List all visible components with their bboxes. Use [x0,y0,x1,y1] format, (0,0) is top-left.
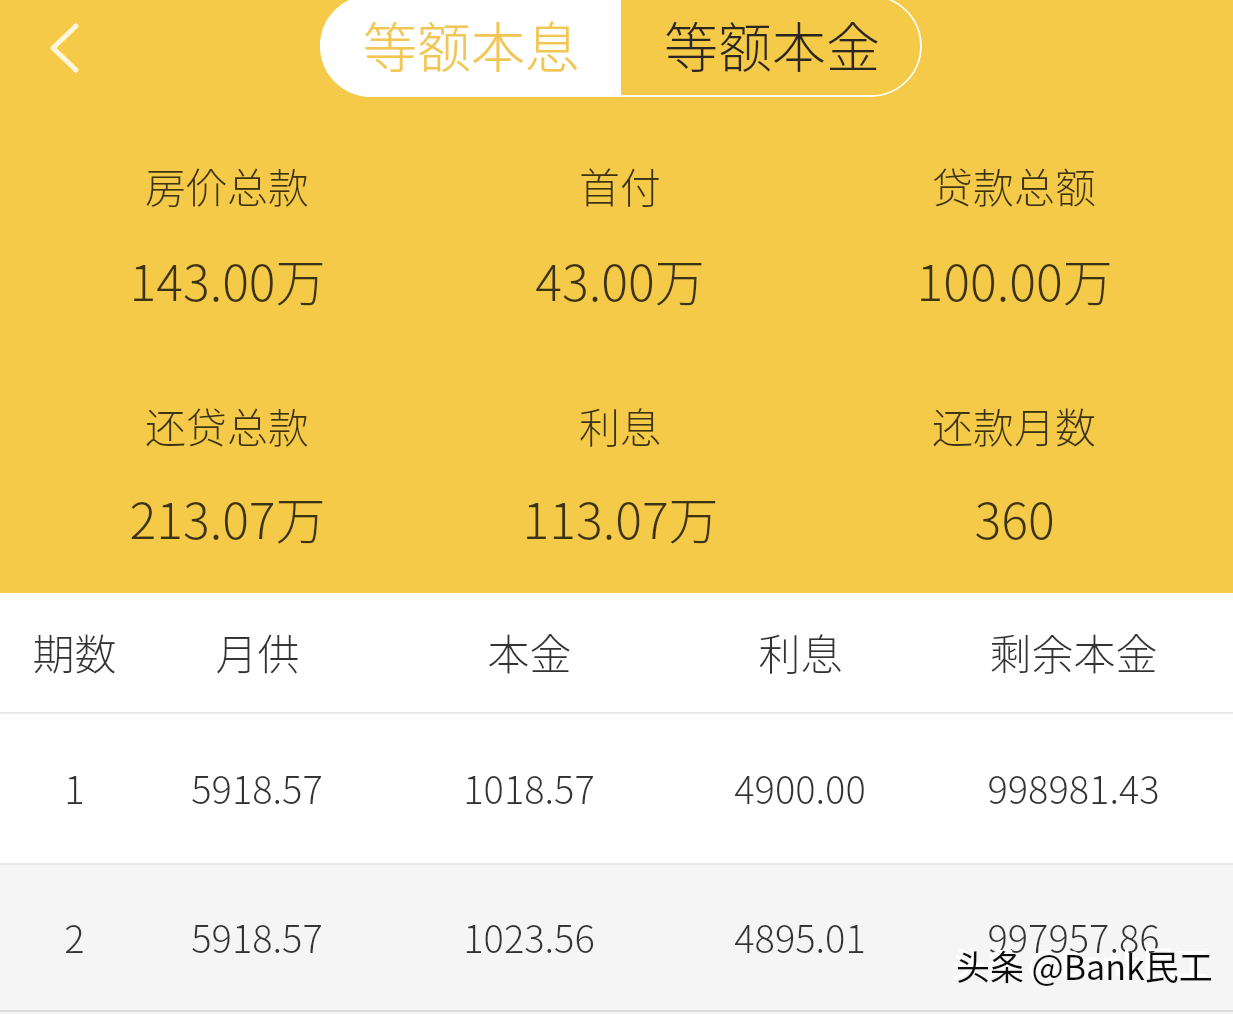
staticText: 4900.00 [734,760,866,815]
staticText: 期数 [32,621,117,682]
staticText: 1023.56 [463,909,595,964]
staticText: 等额本金 [664,5,880,83]
staticText: 43.00万 [535,243,705,315]
staticText: 113.07万 [522,481,719,553]
staticText: 997957.86 [987,909,1160,964]
button[interactable]: 1 [0,714,1233,863]
staticText: 利息 [579,395,661,454]
staticText: 头条 @Bank民工 [952,937,1209,986]
staticText: 4895.01 [734,909,866,964]
button[interactable]: 等额本息 [320,0,621,97]
button[interactable]: 期数 [0,593,1233,712]
staticText: 2 [64,909,85,964]
staticText: 1 [64,760,85,815]
staticText: 利息 [758,621,843,682]
staticText: 5918.57 [191,909,323,964]
staticText: 100.00万 [916,243,1113,315]
staticText: 143.00万 [129,243,326,315]
staticText: 头条 @Bank民工 [956,941,1213,990]
staticText: 房价总款 [145,155,309,214]
staticText: 还贷总款 [145,395,309,454]
staticText: 贷款总额 [932,155,1096,214]
staticText: 360 [974,481,1055,553]
staticText: 等额本息 [363,5,579,83]
button[interactable]: 2 [0,865,1233,1014]
button[interactable]: 等额本金 [621,0,922,97]
staticText: 998981.43 [987,760,1160,815]
staticText: 还款月数 [932,395,1096,454]
staticText: 213.07万 [129,481,326,553]
staticText: 本金 [487,621,572,682]
staticText: 首付 [579,155,661,214]
staticText: 剩余本金 [989,621,1158,682]
staticText: 5918.57 [191,760,323,815]
staticText: 月供 [215,621,300,682]
staticText: 1018.57 [463,760,595,815]
button[interactable]: Back [22,14,88,80]
